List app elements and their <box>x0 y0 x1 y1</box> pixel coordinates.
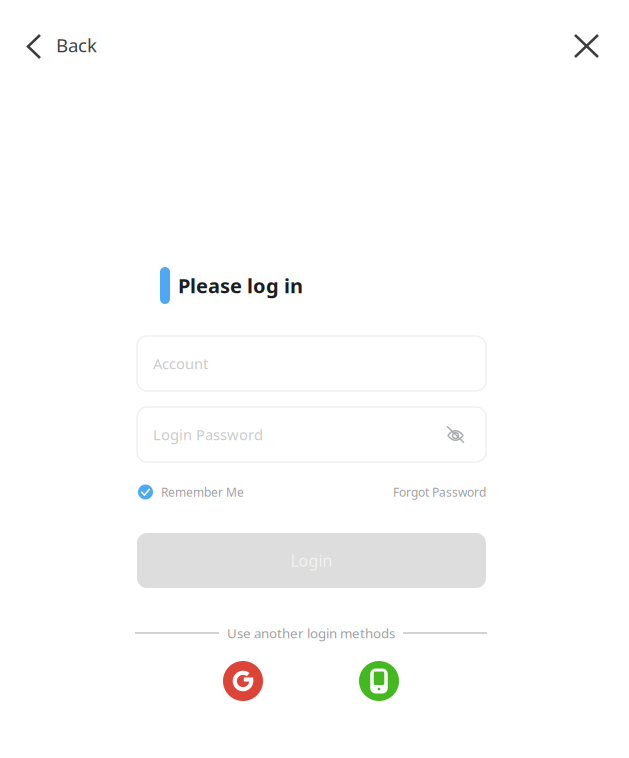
staticText: Back <box>56 33 97 57</box>
button[interactable]: Sign in with Google <box>223 661 263 701</box>
button[interactable]: Show password <box>446 426 465 443</box>
button[interactable]: Sign in with phone number <box>359 661 399 701</box>
staticText: Account <box>153 354 208 373</box>
staticText: Forgot Password <box>393 484 486 500</box>
staticText: Use another login methods <box>227 624 395 642</box>
staticText: Login <box>290 550 332 571</box>
staticText: Login Password <box>153 425 263 444</box>
staticText: Remember Me <box>161 484 244 500</box>
button[interactable]: Back <box>0 21 113 69</box>
button[interactable]: Close <box>555 21 629 69</box>
button[interactable]: Remember Me <box>138 481 244 503</box>
button[interactable]: Forgot Password <box>393 481 486 503</box>
staticText: Please log in <box>178 272 303 299</box>
